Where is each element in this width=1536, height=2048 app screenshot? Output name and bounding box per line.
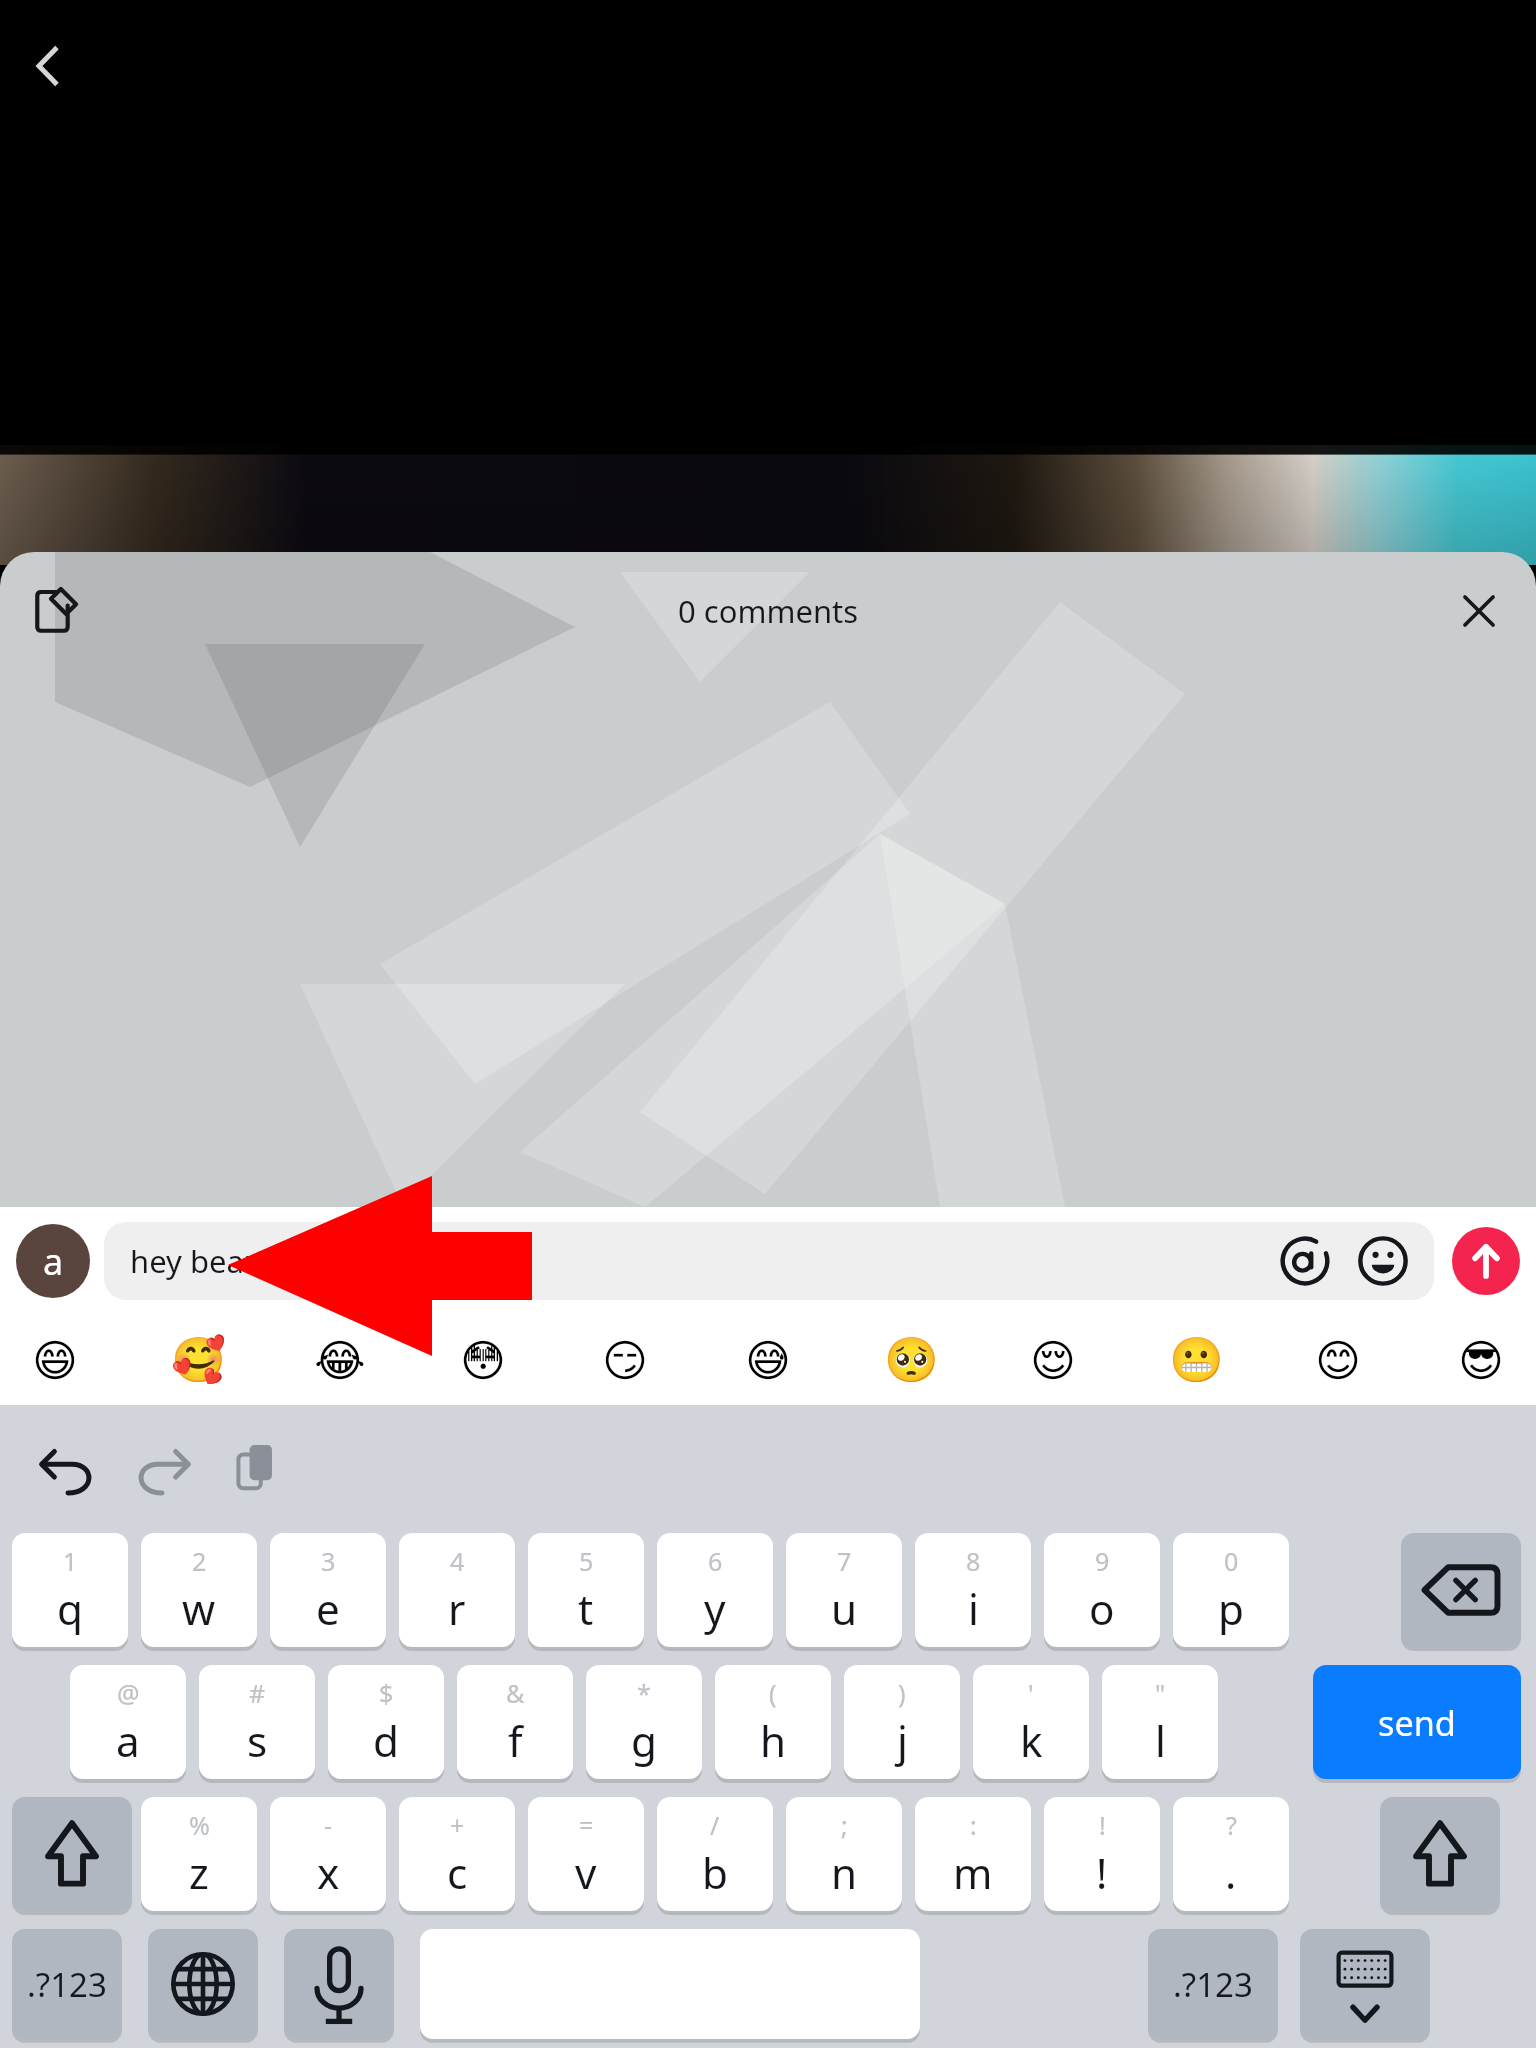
button[interactable]: 0 [1173,1533,1289,1647]
button[interactable]: 2 [141,1533,257,1647]
staticText: z [189,1844,209,1901]
button[interactable]: .?123 [1148,1929,1278,2039]
button[interactable]: $ [328,1665,444,1779]
button[interactable]: Post comment [1452,1227,1520,1295]
button[interactable]: = [528,1797,644,1911]
button[interactable]: 😌 [1018,1325,1088,1395]
button[interactable]: 6 [657,1533,773,1647]
staticText: j [897,1712,908,1769]
button[interactable]: Hide keyboard [1300,1929,1430,2039]
staticText: b [702,1844,728,1901]
button[interactable]: 😎 [1446,1325,1516,1395]
staticText: q [57,1580,83,1637]
button[interactable]: ) [844,1665,960,1779]
staticText: 😎 [1458,1335,1504,1386]
button[interactable]: ; [786,1797,902,1911]
button[interactable]: # [199,1665,315,1779]
staticText: 1 [63,1544,78,1578]
button[interactable]: Undo [28,1429,108,1509]
button[interactable]: Backspace [1401,1533,1521,1647]
button[interactable]: Mention [1274,1230,1336,1292]
staticText: m [953,1844,993,1901]
button[interactable]: ! [1044,1797,1160,1911]
staticText: g [631,1712,657,1769]
button[interactable]: & [457,1665,573,1779]
button[interactable]: Shift [12,1797,132,1911]
button[interactable]: 7 [786,1533,902,1647]
staticText: 🥺 [884,1334,939,1386]
button[interactable]: - [270,1797,386,1911]
button[interactable]: Shift [1380,1797,1500,1911]
staticText: . [1225,1844,1237,1901]
staticText: 6 [708,1544,723,1578]
button[interactable]: hey beautiful [104,1222,1434,1300]
staticText: y [704,1580,726,1637]
button[interactable]: Emoji [1352,1230,1414,1292]
staticText: 7 [837,1544,852,1578]
staticText: * [637,1676,651,1710]
staticText: p [1218,1580,1244,1637]
staticText: l [1155,1712,1166,1769]
staticText: 😳 [460,1335,506,1386]
button[interactable]: 😬 [1161,1325,1231,1395]
staticText: / [710,1808,720,1842]
staticText: 3 [321,1544,336,1578]
button[interactable]: " [1102,1665,1218,1779]
button[interactable]: 5 [528,1533,644,1647]
staticText: % [189,1808,210,1842]
button[interactable]: Write a comment [16,573,92,649]
staticText: ( [769,1676,777,1710]
staticText: v [575,1844,597,1901]
staticText: i [968,1580,979,1637]
staticText: @ [117,1676,140,1710]
staticText: n [831,1844,858,1901]
button[interactable]: % [141,1797,257,1911]
button[interactable]: ( [715,1665,831,1779]
button[interactable]: + [399,1797,515,1911]
staticText: # [249,1676,266,1710]
staticText: $ [379,1676,394,1710]
staticText: 😊 [1315,1335,1361,1386]
button[interactable]: / [657,1797,773,1911]
staticText: 9 [1095,1544,1110,1578]
button[interactable]: Close [1442,574,1516,648]
button[interactable]: 😂 [305,1325,375,1395]
button[interactable]: Back [6,26,86,106]
staticText: ; [841,1808,848,1842]
button[interactable]: 9 [1044,1533,1160,1647]
button[interactable]: 😅 [733,1325,803,1395]
staticText: 0 [1224,1544,1239,1578]
button[interactable]: 😄 [20,1325,90,1395]
button[interactable]: Your profile [16,1224,90,1298]
button[interactable]: : [915,1797,1031,1911]
button[interactable]: 8 [915,1533,1031,1647]
button[interactable]: Voice input [284,1929,394,2039]
button[interactable]: Change language [148,1929,258,2039]
button[interactable]: 😳 [448,1325,518,1395]
staticText: 🥰 [171,1334,226,1386]
staticText: o [1089,1580,1115,1637]
staticText: 2 [192,1544,207,1578]
button[interactable]: ' [973,1665,1089,1779]
button[interactable]: 3 [270,1533,386,1647]
button[interactable]: send [1313,1665,1521,1779]
button[interactable]: 😊 [1303,1325,1373,1395]
button[interactable]: 1 [12,1533,128,1647]
button[interactable]: Clipboard [216,1429,296,1509]
button[interactable]: 😏 [590,1325,660,1395]
button[interactable]: 4 [399,1533,515,1647]
staticText: a [116,1712,140,1769]
button[interactable]: 🥺 [876,1325,946,1395]
staticText: s [247,1712,268,1769]
button[interactable]: .?123 [12,1929,122,2039]
button[interactable]: Redo [122,1429,202,1509]
staticText: - [324,1808,333,1842]
staticText: send [1378,1699,1456,1746]
button[interactable]: ? [1173,1797,1289,1911]
staticText: 😬 [1169,1334,1224,1386]
button[interactable]: 🥰 [163,1325,233,1395]
button[interactable]: * [586,1665,702,1779]
button[interactable]: @ [70,1665,186,1779]
staticText: u [831,1580,858,1637]
